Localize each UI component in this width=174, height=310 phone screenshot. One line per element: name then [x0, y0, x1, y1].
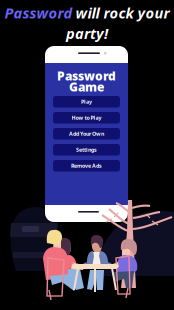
staticText: Play [81, 98, 92, 105]
staticText: How to Play [71, 114, 101, 121]
staticText: Settings [76, 146, 97, 153]
staticText: Remove Ads [71, 162, 102, 169]
button[interactable]: Add Your Own [53, 128, 120, 139]
staticText: Password [57, 68, 116, 84]
button[interactable]: How to Play [53, 112, 120, 123]
button[interactable]: Settings [53, 144, 120, 155]
staticText: Password [4, 3, 72, 22]
staticText: Add Your Own [69, 130, 104, 137]
button[interactable]: Remove Ads [53, 160, 120, 171]
staticText: Game [69, 79, 104, 95]
button[interactable]: Play [53, 96, 120, 107]
staticText: party! [66, 23, 108, 43]
staticText: will rock your [75, 3, 169, 22]
